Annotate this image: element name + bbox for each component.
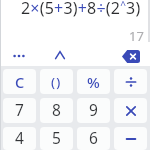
button[interactable] [114, 69, 147, 94]
button[interactable] [122, 50, 140, 63]
staticText: 9 [89, 99, 98, 120]
button[interactable]: C [3, 69, 36, 94]
button[interactable]: 4 [3, 127, 36, 150]
staticText: 6 [89, 127, 98, 148]
button[interactable] [114, 127, 147, 150]
button[interactable]: 9 [77, 98, 110, 123]
button[interactable]: 5 [40, 127, 73, 150]
staticText: % [87, 72, 100, 92]
staticText: C [15, 72, 25, 92]
staticText: 5 [52, 127, 61, 148]
button[interactable] [114, 98, 147, 123]
staticText: 2×(5+3)+8÷(2^3) [21, 0, 141, 19]
button[interactable]: () [40, 69, 73, 94]
staticText: 8 [52, 99, 61, 120]
button[interactable] [55, 51, 65, 59]
button[interactable]: 8 [40, 98, 73, 123]
button[interactable]: 6 [77, 127, 110, 150]
button[interactable] [13, 54, 25, 58]
staticText: () [51, 73, 62, 91]
staticText: 7 [15, 99, 24, 120]
button[interactable]: % [77, 69, 110, 94]
button[interactable]: 7 [3, 98, 36, 123]
staticText: 17 [129, 27, 144, 45]
staticText: 4 [15, 127, 24, 148]
